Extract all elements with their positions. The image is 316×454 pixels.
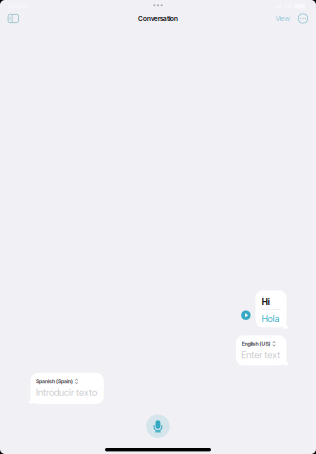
staticText: Introducir texto [36,387,97,398]
button[interactable]: Show Sidebar [1,8,25,28]
staticText: Enter text [241,349,280,361]
staticText: Spanish (Spain) [36,378,73,385]
staticText: Hi [262,297,270,307]
button[interactable]: Record [146,414,170,438]
staticText: Hola [262,313,280,324]
staticText: Conversation [138,14,178,23]
staticText: English (US) [241,341,270,347]
button[interactable]: Spanish (Spain) [28,373,104,404]
button[interactable]: More [293,8,313,28]
staticText: View [275,14,289,23]
button[interactable]: View [270,8,294,28]
button[interactable]: English (US) [236,335,289,365]
